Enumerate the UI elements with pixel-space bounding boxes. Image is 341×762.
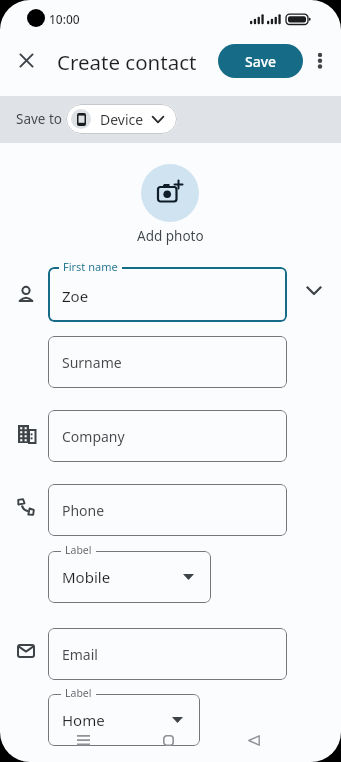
staticText: 10:00 [49,11,80,27]
staticText: Add photo [137,227,204,245]
button[interactable] [306,286,322,296]
button[interactable] [20,54,33,67]
staticText: Surname [62,353,122,372]
staticText: Zoe [62,286,89,306]
button[interactable]: Home [48,694,200,746]
button[interactable] [141,164,199,222]
button[interactable]: Mobile [48,551,211,603]
staticText: Phone [62,501,105,520]
button[interactable]: Surname [48,336,287,388]
staticText: Create contact [57,48,197,76]
staticText: Label [65,686,92,700]
staticText: Email [62,645,98,664]
button[interactable]: Email [48,628,287,680]
button[interactable] [313,45,329,77]
staticText: First name [63,259,118,274]
button[interactable]: Zoe [48,267,287,322]
button[interactable]: Company [48,410,287,462]
staticText: Device [100,110,144,129]
staticText: Save [245,52,277,71]
staticText: Company [62,427,125,446]
button[interactable] [248,735,260,746]
button[interactable] [77,735,90,745]
button[interactable]: Device [66,104,177,134]
button[interactable] [163,735,174,746]
staticText: Label [65,543,92,557]
staticText: Save to [16,110,63,128]
staticText: Home [62,710,105,730]
button[interactable]: Phone [48,484,287,536]
button[interactable]: Save [218,44,303,78]
staticText: Mobile [62,567,111,587]
